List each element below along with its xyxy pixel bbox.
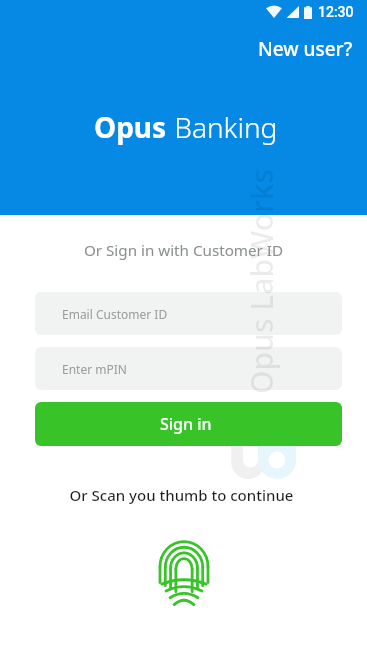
staticText: 12:30 (318, 4, 354, 20)
staticText: Or Sign in with Customer ID (0, 240, 367, 261)
button[interactable]: Scan fingerprint (160, 537, 208, 613)
button[interactable]: New user? (246, 0, 367, 70)
button[interactable] (35, 402, 342, 446)
staticText: Enter mPIN (62, 361, 127, 377)
staticText: Sign in (160, 413, 212, 435)
staticText: Banking (167, 108, 278, 146)
staticText: Email Customer ID (62, 306, 168, 322)
staticText: Opus LabWorks (241, 168, 282, 394)
button[interactable] (35, 347, 342, 390)
staticText: New user? (258, 36, 353, 62)
staticText: Or Scan you thumb to continue (0, 485, 365, 505)
staticText: Opus (94, 108, 167, 146)
button[interactable] (35, 292, 342, 335)
